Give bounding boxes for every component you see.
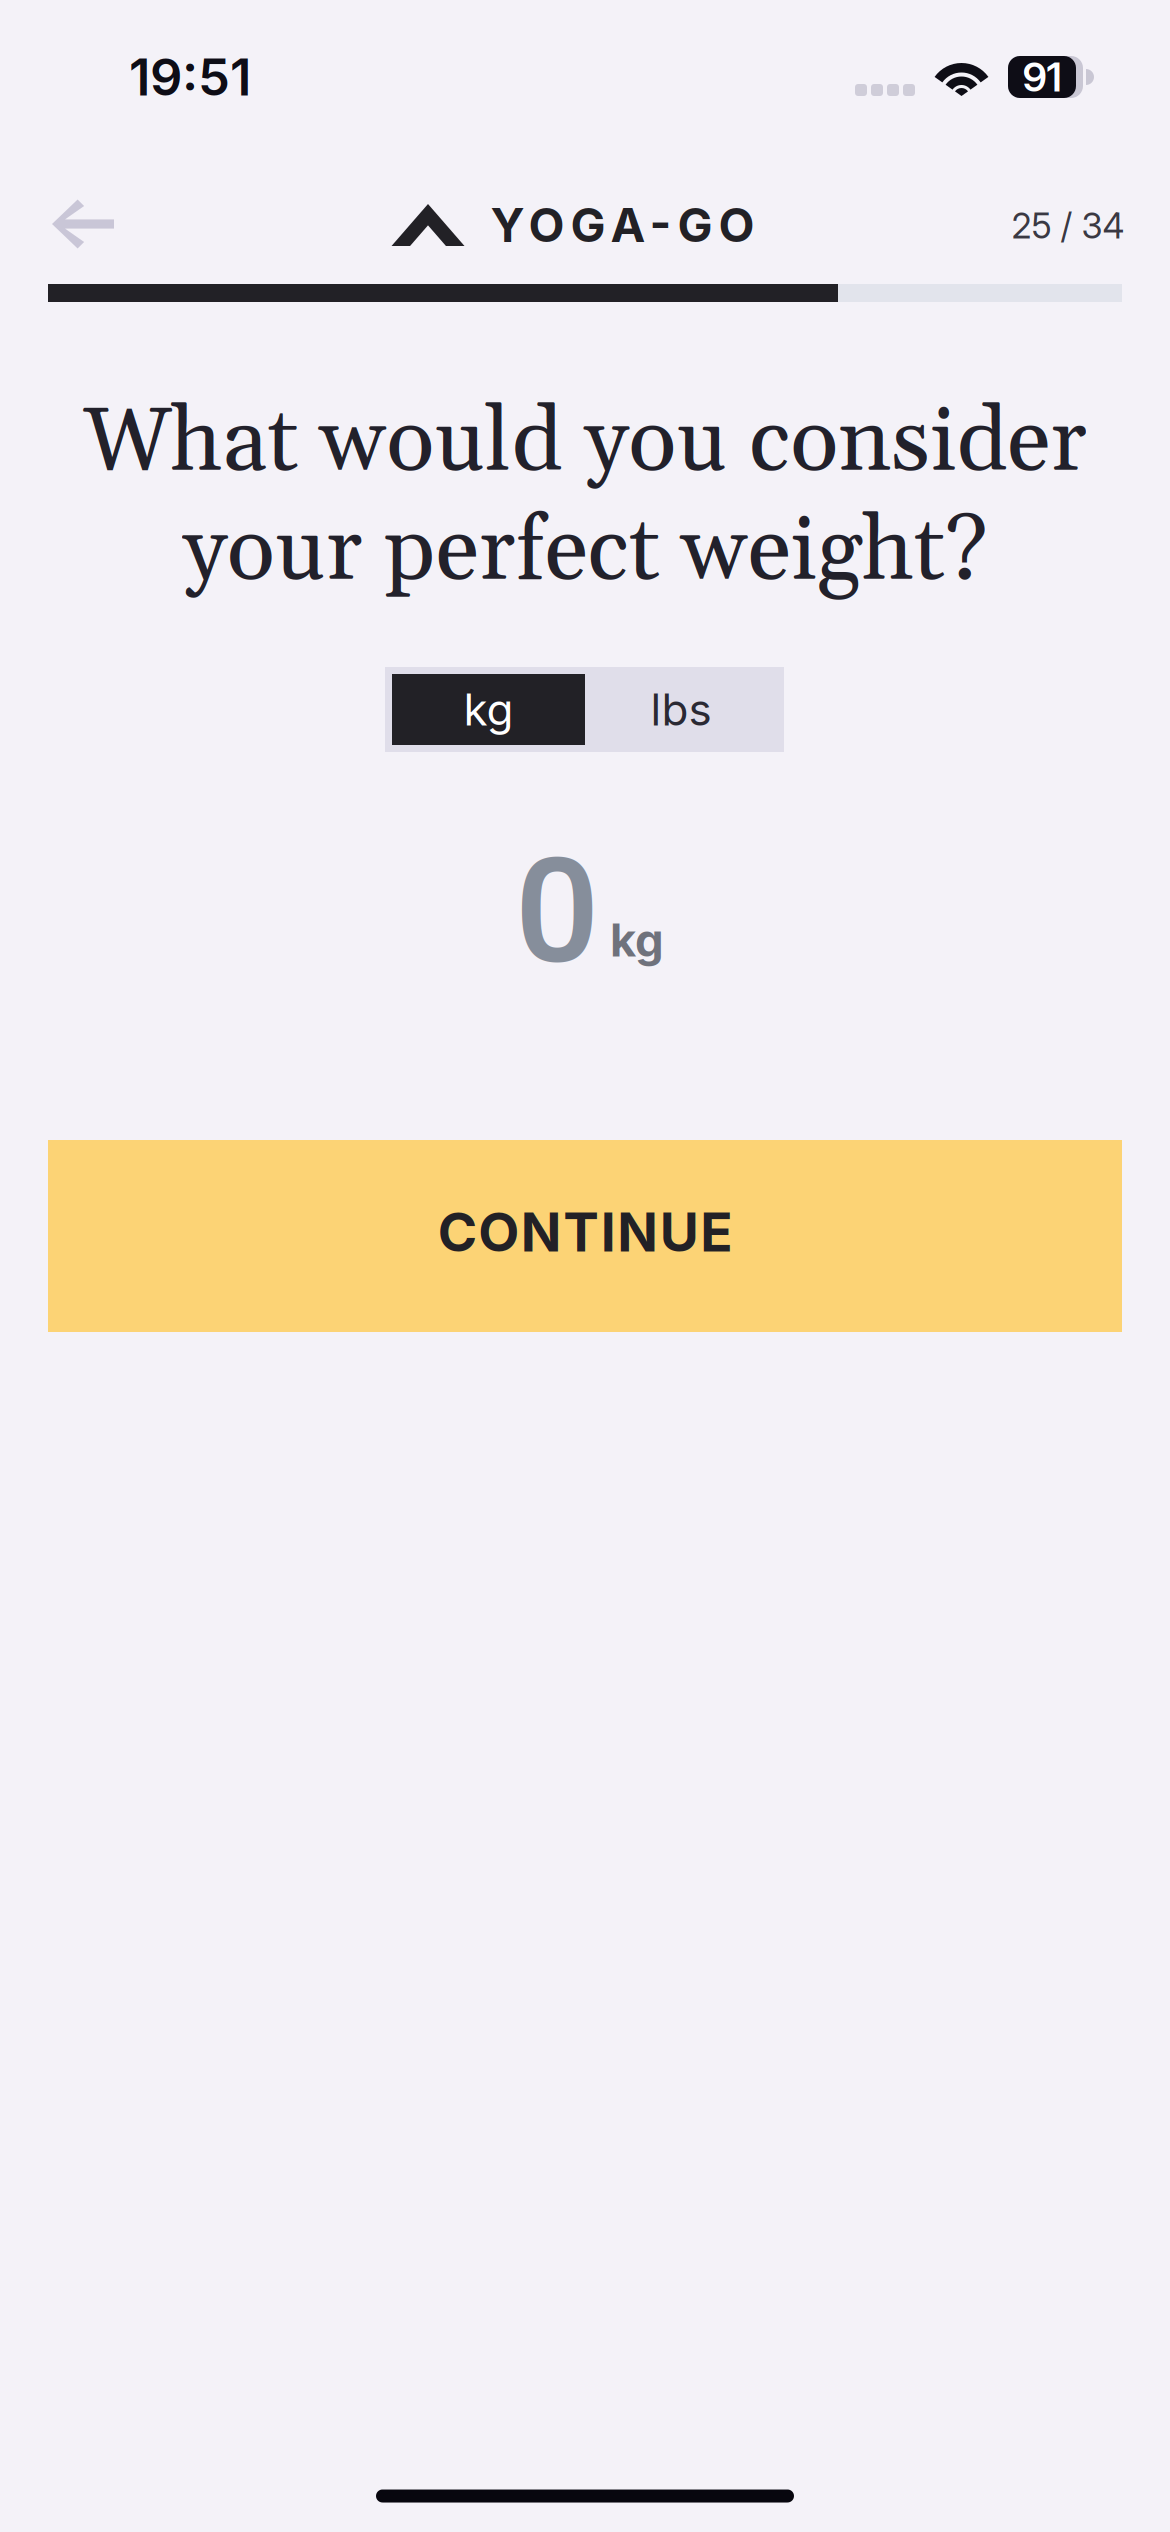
- staticText: 25 / 34: [1011, 205, 1124, 247]
- staticText: 0: [514, 830, 599, 991]
- staticText: kg: [463, 683, 513, 736]
- staticText: 91: [1022, 53, 1061, 101]
- staticText: 19:51: [129, 46, 251, 108]
- staticText: lbs: [650, 683, 711, 736]
- button[interactable]: CONTINUE: [48, 1140, 1122, 1332]
- staticText: CONTINUE: [438, 1200, 732, 1264]
- staticText: What would you consider your perfect wei…: [83, 387, 1087, 609]
- button[interactable]: Back: [37, 178, 129, 270]
- button[interactable]: lbs: [585, 674, 777, 745]
- staticText: kg: [610, 913, 664, 967]
- button[interactable]: kg: [392, 674, 585, 745]
- staticText: YOGA-GO: [490, 197, 754, 253]
